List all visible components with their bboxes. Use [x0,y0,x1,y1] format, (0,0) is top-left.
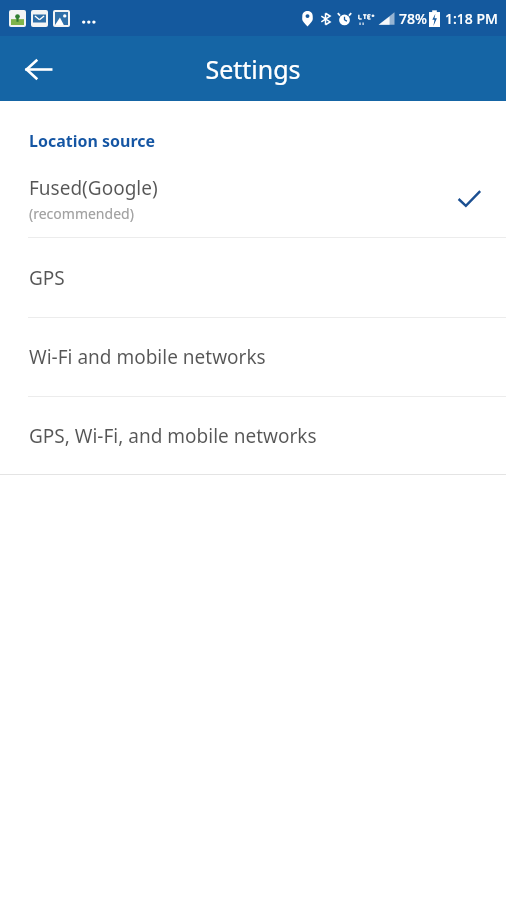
staticText: GPS, Wi-Fi, and mobile networks [29,423,317,449]
staticText: Location source [29,130,156,152]
staticText: GPS [29,265,65,291]
button[interactable]: Back [14,45,62,93]
staticText: 1:18 PM [445,9,498,28]
staticText: (recommended) [29,204,134,223]
staticText: Wi-Fi and mobile networks [29,344,266,370]
button[interactable]: GPS, Wi-Fi, and mobile networks [0,397,506,474]
staticText: Fused(Google) [29,175,158,201]
staticText: 78% [399,9,427,28]
button[interactable]: Fused(Google) [0,161,506,237]
button[interactable]: Wi-Fi and mobile networks [0,318,506,396]
staticText: Settings [205,52,301,86]
button[interactable]: GPS [0,238,506,317]
